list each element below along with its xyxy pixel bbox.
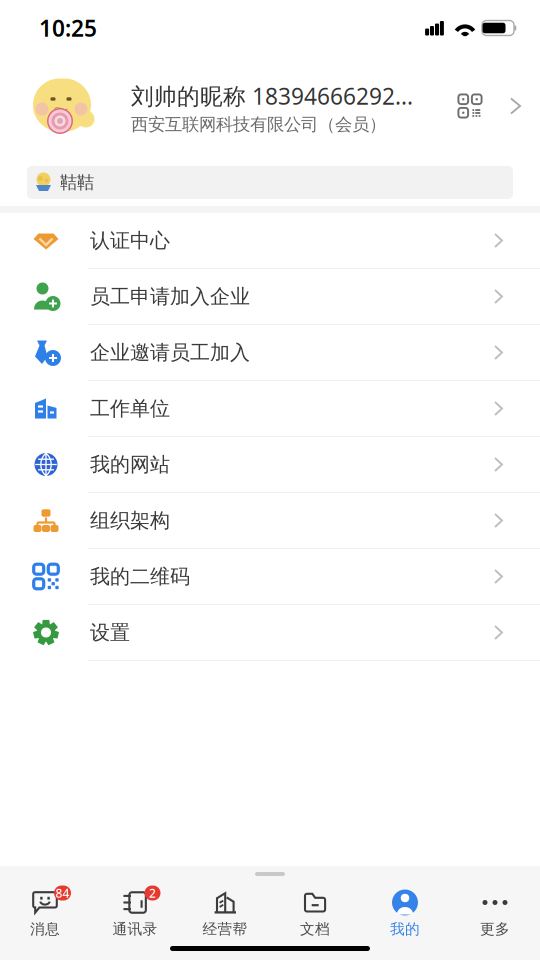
staticText: 认证中心 xyxy=(90,228,170,253)
staticText: 消息 xyxy=(30,920,60,938)
staticText: 通讯录 xyxy=(112,920,157,938)
button[interactable]: 员工申请加入企业 xyxy=(0,269,540,325)
button[interactable]: 刘帅的昵称 18394666292... xyxy=(0,56,540,156)
button[interactable]: 我的二维码 xyxy=(0,549,540,605)
staticText: 我的网站 xyxy=(90,452,170,477)
button[interactable]: 我的网站 xyxy=(0,437,540,493)
button[interactable]: 更多 xyxy=(450,888,540,938)
staticText: 2 xyxy=(149,885,156,901)
button[interactable]: 2 xyxy=(90,888,180,938)
button[interactable]: 认证中心 xyxy=(0,213,540,269)
staticText: 我的二维码 xyxy=(90,564,190,589)
button[interactable]: 鞊鞊 xyxy=(27,166,513,199)
staticText: 文档 xyxy=(300,920,330,938)
button[interactable]: 文档 xyxy=(270,888,360,938)
staticText: 设置 xyxy=(90,620,130,645)
staticText: 员工申请加入企业 xyxy=(90,284,250,309)
button[interactable]: 工作单位 xyxy=(0,381,540,437)
staticText: 刘帅的昵称 18394666292... xyxy=(131,81,413,111)
staticText: 组织架构 xyxy=(90,508,170,533)
staticText: 企业邀请员工加入 xyxy=(90,340,250,365)
button[interactable]: 84 xyxy=(0,888,90,938)
staticText: 更多 xyxy=(480,920,510,938)
staticText: 工作单位 xyxy=(90,396,170,421)
staticText: 经营帮 xyxy=(202,920,247,938)
staticText: 我的 xyxy=(390,920,420,938)
staticText: 西安互联网科技有限公司（会员） xyxy=(131,114,386,135)
button[interactable]: 企业邀请员工加入 xyxy=(0,325,540,381)
button[interactable]: 组织架构 xyxy=(0,493,540,549)
staticText: 84 xyxy=(55,885,69,901)
button[interactable]: 我的 xyxy=(360,888,450,938)
staticText: 鞊鞊 xyxy=(60,172,94,193)
button[interactable]: 设置 xyxy=(0,605,540,661)
staticText: 10:25 xyxy=(39,13,97,43)
button[interactable]: 经营帮 xyxy=(180,888,270,938)
